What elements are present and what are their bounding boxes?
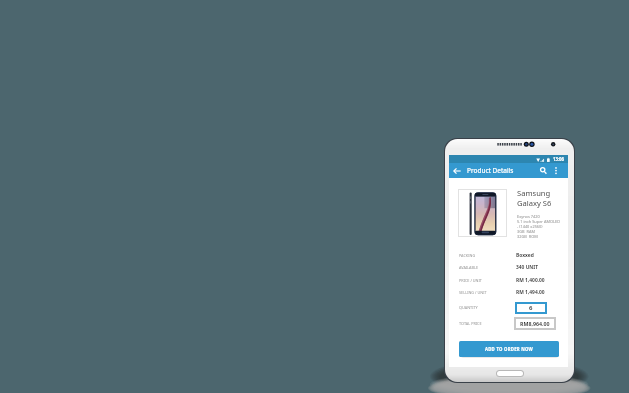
staticText: 5.1 inch Super AMOLED bbox=[517, 219, 561, 224]
staticText: Galaxy S6 bbox=[517, 198, 552, 208]
staticText: 3GB RAM bbox=[517, 229, 536, 234]
button[interactable]: 6 bbox=[515, 302, 547, 314]
button[interactable]: More options bbox=[551, 163, 560, 178]
button[interactable]: ADD TO ORDER NOW bbox=[459, 341, 559, 357]
staticText: Samsung bbox=[517, 188, 551, 198]
button[interactable]: Back bbox=[451, 163, 463, 178]
staticText: 32GB ROM bbox=[517, 234, 538, 239]
staticText: Exynos 7420 bbox=[517, 214, 540, 219]
staticText: RM 1,494.00 bbox=[516, 289, 545, 296]
staticText: TOTAL PRICE bbox=[459, 321, 482, 326]
staticText: 6 bbox=[529, 304, 533, 312]
staticText: AVAILABLE bbox=[459, 265, 479, 270]
staticText: PACKING bbox=[459, 253, 476, 258]
staticText: QUANTITY bbox=[459, 305, 478, 310]
staticText: Product Details bbox=[467, 166, 514, 175]
staticText: SELLING / UNIT bbox=[459, 290, 487, 295]
staticText: ADD TO ORDER NOW bbox=[485, 346, 533, 352]
staticText: PRICE / UNIT bbox=[459, 278, 482, 283]
staticText: - (1440 x2560) bbox=[517, 224, 543, 229]
button[interactable]: Search bbox=[537, 163, 549, 178]
staticText: RM 1,400.00 bbox=[516, 277, 545, 284]
staticText: 13:06 bbox=[553, 156, 565, 162]
staticText: 340 UNIT bbox=[516, 264, 539, 271]
staticText: RM8,964.00 bbox=[520, 320, 550, 327]
staticText: Boxxed bbox=[516, 252, 534, 259]
